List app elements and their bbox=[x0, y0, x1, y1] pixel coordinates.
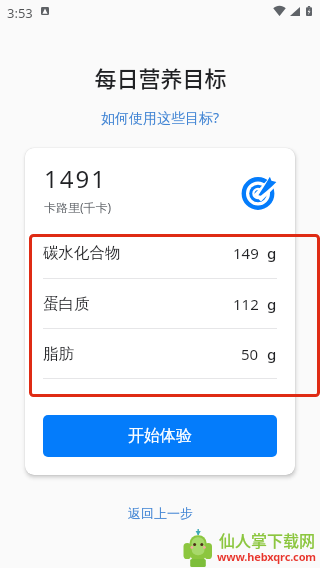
staticText: 开始体验 bbox=[128, 426, 192, 446]
staticText: www.hebxqrc.com bbox=[217, 549, 316, 564]
staticText: 149 bbox=[233, 243, 259, 263]
staticText: 1491 bbox=[44, 162, 107, 195]
staticText: 卡路里(千卡) bbox=[44, 199, 112, 215]
button[interactable]: 脂肪 bbox=[25, 329, 295, 378]
button[interactable]: 返回上一步 bbox=[118, 500, 203, 526]
staticText: 仙人掌下载网 bbox=[219, 528, 316, 551]
staticText: g bbox=[267, 294, 277, 314]
staticText: g bbox=[267, 344, 277, 364]
button[interactable]: 蛋白质 bbox=[25, 279, 295, 328]
button[interactable]: 调整目标 bbox=[243, 175, 279, 211]
staticText: g bbox=[267, 243, 277, 263]
staticText: 蛋白质 bbox=[43, 294, 90, 314]
staticText: 50 bbox=[241, 344, 259, 364]
staticText: 112 bbox=[233, 294, 259, 314]
button[interactable]: 如何使用这些目标? bbox=[91, 103, 230, 132]
staticText: 脂肪 bbox=[43, 344, 74, 364]
staticText: 每日营养目标 bbox=[94, 61, 227, 93]
staticText: 碳水化合物 bbox=[43, 243, 121, 263]
button[interactable]: 碳水化合物 bbox=[25, 228, 295, 278]
button[interactable]: 开始体验 bbox=[43, 415, 277, 457]
staticText: 3:53 bbox=[7, 4, 33, 22]
